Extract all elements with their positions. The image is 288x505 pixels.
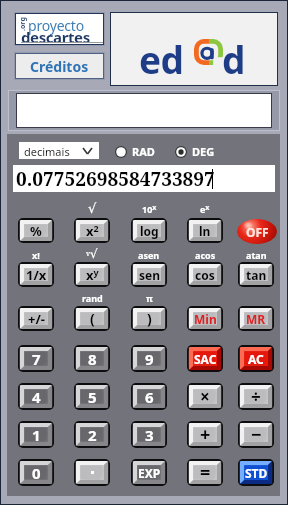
button[interactable]: RAD (115, 144, 155, 159)
staticText: ÷ (251, 385, 261, 408)
button[interactable]: proyecto descartes (16, 14, 103, 44)
button[interactable]: 7 (18, 345, 54, 372)
staticText: EXP (138, 465, 161, 481)
button[interactable]: ed@d logo (111, 13, 277, 85)
staticText: sen (139, 267, 160, 283)
button[interactable]: x2 (74, 218, 110, 243)
button[interactable] (74, 459, 110, 486)
staticText: atan (246, 249, 267, 260)
button[interactable]: cos (187, 262, 223, 287)
staticText: Créditos (30, 57, 89, 76)
button[interactable]: decimais (19, 142, 99, 159)
button[interactable]: 8 (74, 345, 110, 372)
staticText: = (200, 460, 211, 485)
staticText: 1/x (26, 266, 47, 284)
button[interactable]: ) (131, 306, 167, 331)
button[interactable]: + (187, 421, 223, 448)
staticText: Min (194, 311, 217, 327)
staticText: MR (246, 311, 266, 327)
staticText: AC (248, 351, 264, 367)
staticText: proyecto (28, 16, 84, 35)
button[interactable]: 0.07752698584733897 (13, 165, 275, 192)
staticText: ed (139, 34, 184, 84)
button[interactable]: − (238, 421, 274, 448)
button[interactable]: 1 (18, 421, 54, 448)
staticText: RAD (132, 144, 155, 159)
staticText: √ (88, 201, 97, 216)
button[interactable]: SAC (187, 345, 223, 372)
staticText: 0 (32, 463, 41, 483)
staticText: +/- (28, 310, 45, 328)
staticText: 7 (32, 349, 41, 369)
staticText: x2 (86, 222, 99, 240)
staticText: STD (245, 465, 268, 481)
button[interactable]: × (187, 383, 223, 410)
button[interactable]: Min (187, 306, 223, 331)
staticText: 3 (145, 425, 154, 445)
staticText: tan (246, 267, 267, 283)
staticText: OFF (246, 224, 269, 240)
staticText: × (200, 385, 210, 408)
button[interactable]: 6 (131, 383, 167, 410)
staticText: acos (195, 249, 216, 260)
button[interactable]: 4 (18, 383, 54, 410)
staticText: π (146, 292, 153, 303)
button[interactable]: ( (74, 306, 110, 331)
button[interactable]: 5 (74, 383, 110, 410)
staticText: 1 (32, 425, 41, 445)
staticText: v√ (86, 247, 98, 261)
button[interactable]: 9 (131, 345, 167, 372)
staticText: 4 (32, 387, 41, 407)
button[interactable]: % (18, 218, 54, 243)
staticText: asen (138, 249, 160, 260)
button[interactable]: xy (74, 262, 110, 287)
button[interactable]: log (131, 218, 167, 243)
staticText: 9 (145, 349, 154, 369)
button[interactable]: ÷ (238, 383, 274, 410)
staticText: SAC (194, 351, 217, 367)
button[interactable]: 3 (131, 421, 167, 448)
staticText: 5 (88, 387, 97, 407)
staticText: ex (200, 203, 210, 214)
staticText: 2 (88, 425, 97, 445)
staticText: 0.07752698584733897 (16, 166, 215, 192)
staticText: xy (86, 266, 99, 284)
button[interactable]: AC (238, 345, 274, 372)
staticText: decimais (24, 144, 70, 159)
staticText: + (200, 422, 211, 447)
button[interactable]: EXP (131, 459, 167, 486)
staticText: d (222, 34, 246, 84)
button[interactable]: 0 (18, 459, 54, 486)
button[interactable]: OFF (237, 219, 277, 244)
button[interactable]: 2 (74, 421, 110, 448)
button[interactable]: MR (238, 306, 274, 331)
staticText: − (251, 422, 262, 447)
staticText: % (30, 222, 42, 240)
button[interactable]: 1/x (18, 262, 54, 287)
button[interactable]: DEG (175, 144, 215, 159)
button[interactable]: STD (238, 459, 274, 486)
staticText: DEG (192, 144, 215, 159)
staticText: descartes (21, 27, 90, 47)
button[interactable]: Créditos (16, 54, 103, 78)
button[interactable]: tan (238, 262, 274, 287)
button[interactable]: = (187, 459, 223, 486)
staticText: x! (32, 249, 40, 260)
staticText: ( (90, 309, 95, 328)
button[interactable]: sen (131, 262, 167, 287)
staticText: 8 (88, 349, 97, 369)
staticText: 10x (142, 203, 157, 214)
staticText: .org (18, 17, 28, 31)
staticText: ln (199, 223, 211, 239)
staticText: 6 (145, 387, 154, 407)
staticText: ) (147, 309, 152, 328)
button[interactable]: ln (187, 218, 223, 243)
staticText: log (140, 223, 159, 239)
staticText: rand (82, 292, 103, 303)
staticText: cos (195, 267, 215, 283)
button[interactable]: +/- (18, 306, 54, 331)
